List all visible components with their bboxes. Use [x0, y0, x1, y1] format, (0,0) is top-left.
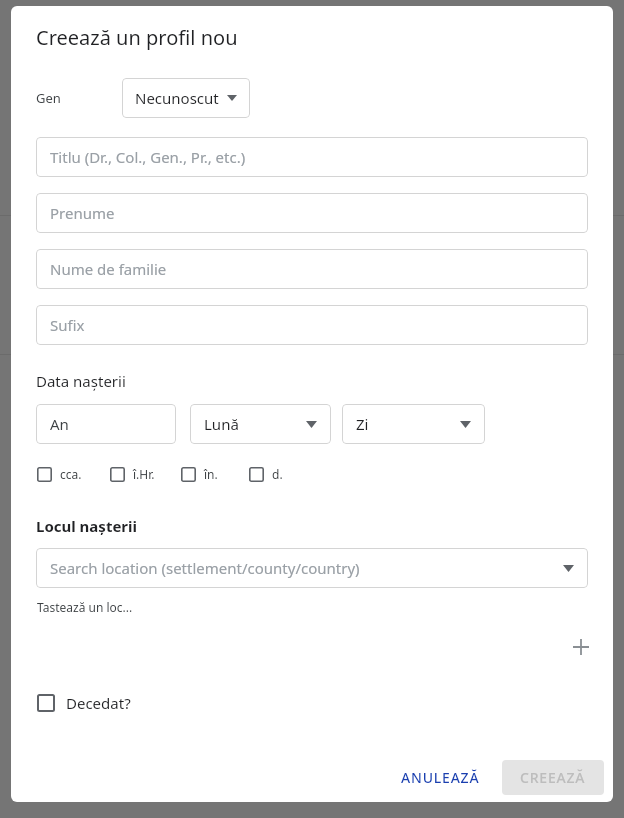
staticText: în.	[204, 466, 218, 482]
staticText: Gen	[36, 89, 61, 107]
staticText: î.Hr.	[133, 466, 155, 482]
button[interactable]: Sufix	[36, 305, 588, 345]
button[interactable]: Prenume	[36, 193, 588, 233]
staticText: Creează un profil nou	[36, 24, 238, 51]
button[interactable]: Decedat?	[37, 693, 131, 713]
staticText: d.	[272, 466, 283, 482]
button[interactable]: Titlu (Dr., Col., Gen., Pr., etc.)	[36, 137, 588, 177]
staticText: Nume de familie	[50, 259, 167, 279]
button[interactable]: Lună	[190, 404, 331, 444]
button[interactable]: d.	[249, 466, 283, 482]
staticText: Titlu (Dr., Col., Gen., Pr., etc.)	[50, 147, 246, 167]
button[interactable]: cca.	[37, 466, 82, 482]
staticText: Data nașterii	[36, 371, 126, 391]
staticText: Locul nașterii	[36, 516, 138, 536]
button[interactable]: în.	[181, 466, 218, 482]
button[interactable]: Adaugă	[565, 631, 597, 663]
staticText: Tastează un loc...	[37, 599, 133, 615]
button[interactable]: Zi	[342, 404, 485, 444]
staticText: Prenume	[50, 203, 115, 223]
staticText: Decedat?	[66, 693, 131, 713]
staticText: cca.	[60, 466, 82, 482]
staticText: Sufix	[50, 315, 85, 335]
staticText: Necunoscut	[135, 88, 219, 108]
button[interactable]: Search location (settlement/county/count…	[36, 548, 588, 588]
staticText: Lună	[204, 414, 239, 434]
staticText: Search location (settlement/county/count…	[50, 558, 360, 578]
staticText: An	[50, 414, 69, 434]
button[interactable]: CREEAZĂ	[502, 760, 604, 795]
button[interactable]: ANULEAZĂ	[391, 759, 490, 796]
staticText: ANULEAZĂ	[401, 768, 480, 787]
button[interactable]: An	[36, 404, 176, 444]
button[interactable]: î.Hr.	[110, 466, 155, 482]
staticText: CREEAZĂ	[520, 768, 586, 787]
button[interactable]: Necunoscut	[122, 78, 250, 118]
staticText: Zi	[356, 414, 369, 434]
button[interactable]: Nume de familie	[36, 249, 588, 289]
